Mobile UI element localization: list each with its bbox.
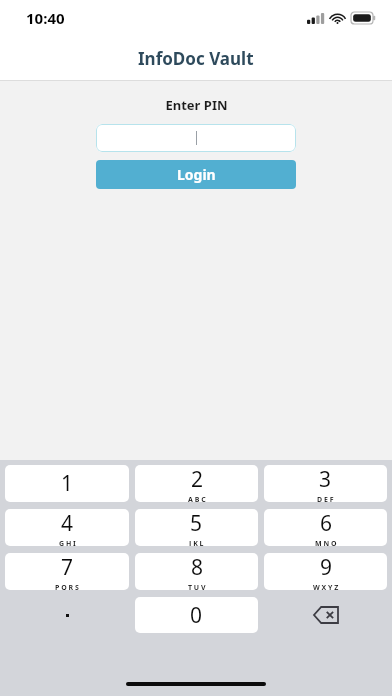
staticText: P Q R S [55, 583, 79, 590]
staticText: 8 [191, 553, 204, 582]
button[interactable]: Backspace [264, 597, 387, 633]
staticText: 5 [190, 509, 203, 538]
staticText: 2 [191, 465, 204, 494]
button[interactable]: 8 [135, 553, 258, 590]
staticText: 9 [320, 553, 333, 582]
button[interactable]: 2 [135, 465, 258, 502]
staticText: 3 [319, 465, 332, 494]
staticText: 4 [61, 509, 74, 538]
button[interactable]: 1 [5, 465, 129, 502]
staticText: InfoDoc Vault [138, 47, 254, 70]
staticText: J K L [189, 539, 204, 546]
button[interactable]: 9 [264, 553, 387, 590]
button[interactable]: 3 [264, 465, 387, 502]
button[interactable] [96, 124, 296, 152]
button[interactable]: 7 [5, 553, 129, 590]
staticText: M N O [315, 539, 337, 546]
staticText: 10:40 [26, 8, 65, 28]
staticText: 1 [61, 469, 74, 498]
staticText: Login [177, 165, 216, 184]
staticText: Enter PIN [165, 96, 228, 114]
staticText: G H I [59, 539, 76, 546]
staticText: A B C [188, 495, 206, 502]
button[interactable]: 5 [135, 509, 258, 546]
staticText: 0 [190, 601, 203, 630]
staticText: 6 [320, 509, 333, 538]
staticText: T U V [188, 583, 206, 590]
staticText: 7 [61, 553, 74, 582]
button[interactable]: 6 [264, 509, 387, 546]
button[interactable]: 0 [135, 597, 258, 633]
staticText: D E F [317, 495, 334, 502]
button[interactable]: Period [5, 597, 129, 633]
button[interactable]: Login [96, 160, 296, 189]
staticText: W X Y Z [313, 583, 339, 590]
button[interactable]: 4 [5, 509, 129, 546]
